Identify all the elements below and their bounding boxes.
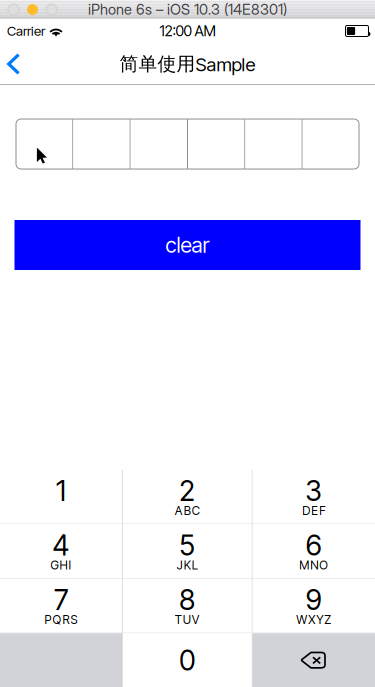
staticText: 0 <box>179 643 195 677</box>
staticText: 1 <box>56 474 66 508</box>
staticText: clear <box>165 232 209 258</box>
button[interactable]: Back <box>0 42 44 85</box>
staticText: 2 <box>179 474 195 508</box>
staticText: 12:00 AM <box>159 22 215 40</box>
staticText: 简单使用Sample <box>119 52 255 76</box>
staticText: WXYZ <box>296 612 331 627</box>
staticText: 5 <box>179 528 195 562</box>
staticText: 7 <box>54 583 68 617</box>
staticText: DEF <box>302 503 325 518</box>
staticText: iPhone 6s – iOS 10.3 (14E8301) <box>88 1 287 18</box>
button[interactable]: 2 <box>123 470 252 524</box>
staticText: JKL <box>177 558 198 572</box>
staticText: PQRS <box>44 612 77 627</box>
staticText: 4 <box>52 528 69 562</box>
staticText: 3 <box>305 474 322 508</box>
button[interactable]: 1 <box>0 470 122 524</box>
staticText: Carrier <box>7 23 45 39</box>
button[interactable]: Delete <box>253 633 375 687</box>
button[interactable]: 0 <box>123 633 252 687</box>
button[interactable]: 9 <box>253 579 375 633</box>
button[interactable]: 8 <box>123 579 252 633</box>
staticText: 8 <box>179 583 195 617</box>
button[interactable]: 4 <box>0 524 122 578</box>
staticText: TUV <box>175 612 200 627</box>
staticText: GHI <box>50 558 71 572</box>
button[interactable]: clear <box>14 220 360 270</box>
button[interactable]: 6 <box>253 524 375 578</box>
staticText: 6 <box>306 528 322 562</box>
button[interactable]: 7 <box>0 579 122 633</box>
staticText: 9 <box>306 583 322 617</box>
button[interactable]: 3 <box>253 470 375 524</box>
staticText: MNO <box>299 558 328 572</box>
button[interactable]: 5 <box>123 524 252 578</box>
staticText: ABC <box>175 503 200 518</box>
